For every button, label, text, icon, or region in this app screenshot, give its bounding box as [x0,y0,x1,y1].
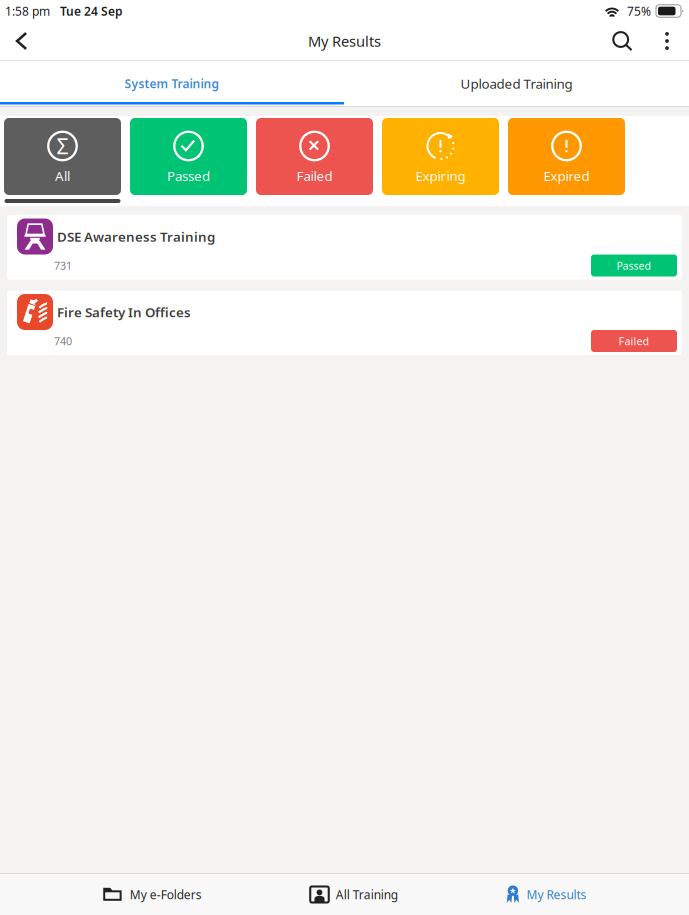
button[interactable]: More options [645,22,689,60]
staticText: Fire Safety In Offices [57,303,191,321]
staticText: Uploaded Training [460,75,572,92]
staticText: 75% [627,3,651,19]
staticText: 740 [54,334,72,348]
button[interactable]: Fire Safety In Offices [7,290,682,355]
button[interactable]: DSE Awareness Training [7,215,682,279]
button[interactable]: Σ [4,118,121,195]
button[interactable]: System Training [0,62,344,104]
button[interactable]: My Results [500,874,592,915]
staticText: My Results [308,31,381,51]
button[interactable]: Expired [508,118,625,195]
staticText: My e-Folders [130,886,202,902]
button[interactable]: Passed [130,118,247,195]
staticText: Expired [543,167,589,185]
staticText: System Training [124,75,219,91]
staticText: 1:58 pm [5,3,50,19]
staticText: All Training [336,886,398,902]
button[interactable]: Uploaded Training [344,62,689,104]
staticText: Tue 24 Sep [60,3,123,19]
staticText: My Results [526,886,586,902]
staticText: Failed [618,334,649,348]
staticText: 731 [54,258,72,273]
staticText: DSE Awareness Training [57,228,215,245]
button[interactable]: Failed [256,118,373,195]
button[interactable]: My e-Folders [97,874,208,915]
button[interactable]: Search [599,22,645,60]
staticText: Failed [296,167,332,185]
button[interactable]: Expiring [382,118,499,195]
button[interactable]: Back [0,22,43,60]
staticText: All [55,167,70,185]
staticText: Passed [167,167,210,185]
staticText: Passed [616,258,651,273]
button[interactable]: All Training [304,874,404,915]
staticText: Expiring [415,167,465,185]
staticText: Σ [56,132,68,160]
